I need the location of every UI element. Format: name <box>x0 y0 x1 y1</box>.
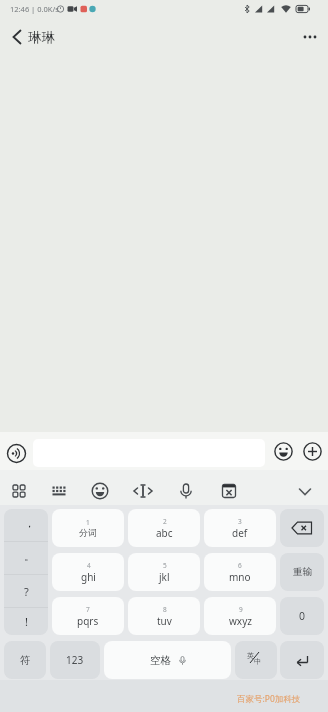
button[interactable] <box>4 24 30 50</box>
button[interactable]: 0 <box>280 597 324 635</box>
staticText: 9 <box>239 605 243 614</box>
button[interactable]: 英 <box>235 641 277 679</box>
button[interactable]: 8 <box>128 597 200 635</box>
button[interactable] <box>87 478 113 504</box>
button[interactable] <box>130 478 156 504</box>
button[interactable]: 9 <box>204 597 276 635</box>
staticText: ! <box>25 614 28 629</box>
button[interactable] <box>274 442 293 461</box>
staticText: 7 <box>86 605 90 614</box>
button[interactable] <box>46 478 72 504</box>
staticText: mno <box>229 570 251 584</box>
button[interactable]: 1 <box>52 509 124 547</box>
staticText: 重输 <box>293 566 312 578</box>
staticText: 琳琳 <box>28 29 55 46</box>
staticText: 2 <box>163 517 167 526</box>
button[interactable]: 符 <box>4 641 46 679</box>
button[interactable]: 7 <box>52 597 124 635</box>
button[interactable] <box>280 509 324 547</box>
staticText: 5 <box>163 561 167 570</box>
staticText: jkl <box>159 570 170 584</box>
button[interactable]: 3 <box>204 509 276 547</box>
staticText: 1 <box>86 518 90 527</box>
staticText: 分词 <box>79 527 97 538</box>
button[interactable] <box>6 443 27 464</box>
staticText: 中 <box>254 657 261 666</box>
button[interactable]: 2 <box>128 509 200 547</box>
staticText: 空格 <box>150 654 171 667</box>
staticText: 符 <box>20 654 31 667</box>
button[interactable]: ， <box>4 509 48 541</box>
staticText: wxyz <box>229 614 252 628</box>
button[interactable] <box>280 641 324 679</box>
staticText: 3 <box>238 517 242 526</box>
button[interactable]: 空格 <box>104 641 231 679</box>
staticText: 百家号:P0加科技 <box>237 693 301 705</box>
button[interactable]: 。 <box>4 542 48 574</box>
button[interactable] <box>303 442 322 461</box>
staticText: def <box>232 526 248 540</box>
staticText: 123 <box>66 653 84 667</box>
staticText: 英 <box>247 651 254 660</box>
button[interactable]: 123 <box>50 641 100 679</box>
staticText: pqrs <box>77 614 99 628</box>
button[interactable]: 4 <box>52 553 124 591</box>
staticText: 12:46 | 0.0K/s <box>10 4 59 14</box>
staticText: 4 <box>87 561 91 570</box>
staticText: 0 <box>299 609 306 623</box>
button[interactable] <box>6 478 32 504</box>
staticText: ， <box>24 516 35 530</box>
staticText: tuv <box>157 614 172 628</box>
staticText: abc <box>156 526 173 540</box>
staticText: 。 <box>24 549 35 563</box>
button[interactable] <box>296 24 324 50</box>
button[interactable]: 重输 <box>280 553 324 591</box>
staticText: 8 <box>163 605 167 614</box>
staticText: 6 <box>238 561 242 570</box>
staticText: ghi <box>81 570 96 584</box>
button[interactable] <box>216 478 242 504</box>
button[interactable] <box>292 478 318 504</box>
button[interactable]: ! <box>4 608 48 635</box>
button[interactable]: 5 <box>128 553 200 591</box>
button[interactable]: ? <box>4 575 48 607</box>
button[interactable] <box>173 478 199 504</box>
staticText: ? <box>24 584 29 599</box>
button[interactable]: 6 <box>204 553 276 591</box>
